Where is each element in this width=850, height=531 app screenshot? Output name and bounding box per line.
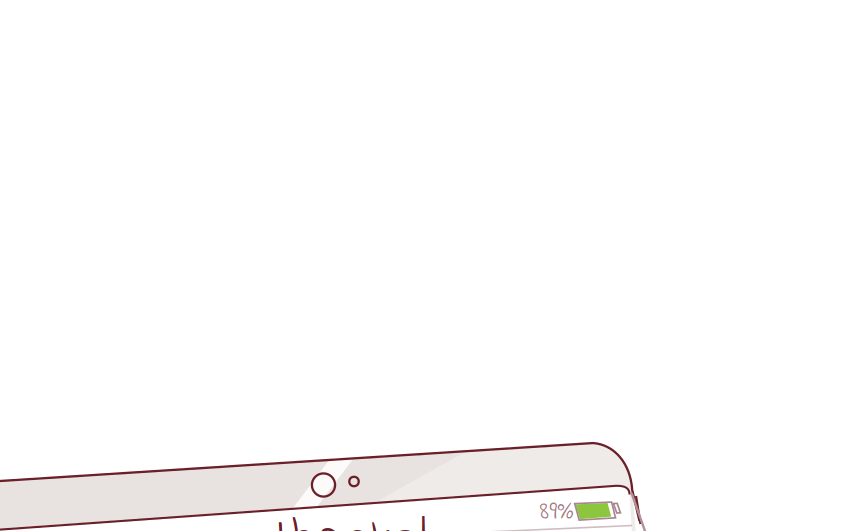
staticText: 89%: [539, 494, 573, 531]
staticText: thanks!: [272, 502, 428, 531]
